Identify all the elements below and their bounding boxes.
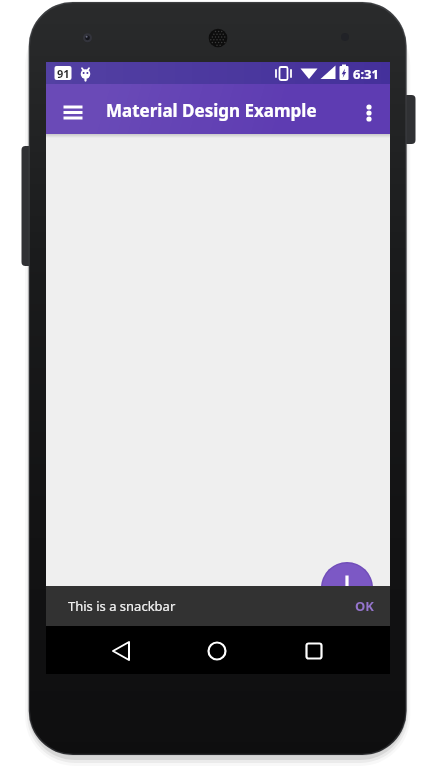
button[interactable] [102, 632, 140, 670]
button[interactable] [353, 97, 385, 129]
staticText: 6:31 [353, 65, 379, 83]
button[interactable] [57, 98, 89, 130]
button[interactable] [198, 632, 236, 670]
staticText: Material Design Example [106, 99, 317, 122]
staticText: OK [355, 597, 374, 615]
staticText: This is a snackbar [68, 597, 176, 615]
button[interactable] [321, 562, 373, 586]
staticText: 91 [57, 66, 70, 81]
button[interactable] [295, 632, 333, 670]
button[interactable]: OK [351, 591, 378, 621]
